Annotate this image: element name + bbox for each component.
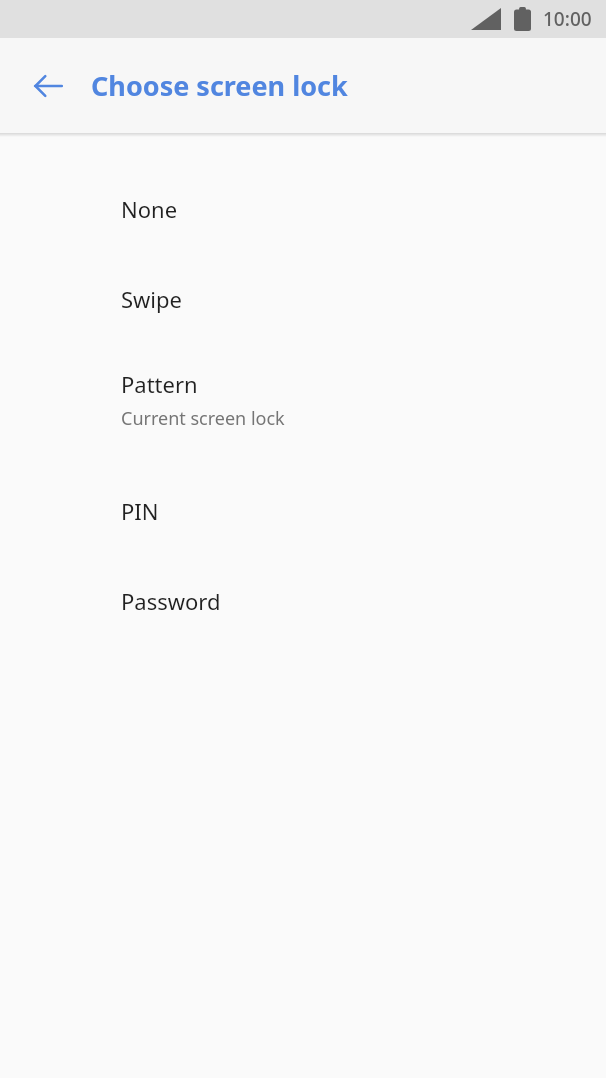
staticText: 10:00: [543, 6, 592, 32]
staticText: None: [121, 194, 178, 224]
button[interactable]: None: [0, 172, 606, 262]
staticText: Pattern: [121, 369, 198, 399]
button[interactable]: Password: [0, 564, 606, 654]
staticText: Choose screen lock: [91, 67, 348, 104]
staticText: Current screen lock: [121, 406, 285, 431]
button[interactable]: Swipe: [0, 262, 606, 352]
staticText: Swipe: [121, 284, 182, 314]
button[interactable]: Pattern: [0, 352, 606, 474]
button[interactable]: PIN: [0, 474, 606, 564]
staticText: Password: [121, 586, 221, 616]
staticText: PIN: [121, 496, 159, 526]
button[interactable]: Back: [22, 60, 74, 112]
